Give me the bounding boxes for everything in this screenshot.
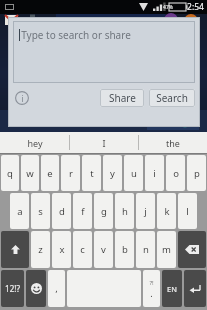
button[interactable]: Key: [1, 270, 24, 307]
button[interactable]: l: [178, 193, 197, 229]
staticText: Share: [109, 91, 136, 105]
staticText: p: [194, 167, 200, 180]
staticText: a: [17, 205, 23, 218]
button[interactable]: Key: [184, 270, 206, 307]
button[interactable]: e: [41, 155, 59, 191]
button[interactable]: f: [73, 193, 92, 229]
button[interactable]: ?!: [143, 270, 160, 307]
button[interactable]: n: [136, 231, 155, 268]
button[interactable]: g: [94, 193, 113, 229]
staticText: w: [26, 167, 34, 180]
staticText: Search: [156, 91, 188, 105]
staticText: b: [122, 243, 128, 256]
button[interactable]: s: [31, 193, 50, 229]
staticText: g: [101, 205, 107, 218]
button[interactable]: Key: [1, 231, 29, 268]
staticText: j: [144, 205, 147, 218]
button[interactable]: o: [166, 155, 185, 191]
staticText: ?!: [149, 279, 154, 287]
staticText: s: [38, 205, 43, 218]
staticText: ,: [55, 282, 58, 295]
staticText: v: [101, 243, 106, 256]
staticText: 2:54: [187, 1, 204, 13]
button[interactable]: w: [21, 155, 39, 191]
button[interactable]: x: [52, 231, 71, 268]
staticText: i: [21, 93, 24, 104]
staticText: .: [150, 287, 153, 299]
staticText: r: [69, 167, 73, 180]
staticText: u: [131, 167, 137, 180]
staticText: hey: [27, 137, 43, 149]
staticText: o: [173, 167, 179, 180]
button[interactable]: c: [73, 231, 92, 268]
staticText: Type to search or share: [21, 28, 131, 42]
staticText: c: [80, 243, 85, 256]
button[interactable]: t: [82, 155, 101, 191]
staticText: z: [38, 243, 43, 256]
staticText: f: [81, 205, 85, 218]
staticText: x: [59, 243, 65, 256]
staticText: m: [162, 243, 171, 256]
button[interactable]: j: [136, 193, 155, 229]
staticText: n: [143, 243, 149, 256]
button[interactable]: the: [139, 132, 207, 153]
button[interactable]: p: [187, 155, 206, 191]
button[interactable]: b: [115, 231, 134, 268]
button[interactable]: i: [145, 155, 164, 191]
button[interactable]: hey: [0, 132, 69, 153]
button[interactable]: Type to search or share: [13, 21, 195, 83]
staticText: d: [59, 205, 65, 218]
staticText: q: [7, 167, 13, 180]
button[interactable]: h: [115, 193, 134, 229]
button[interactable]: Share: [100, 89, 144, 107]
button[interactable]: z: [31, 231, 50, 268]
staticText: 12!?: [5, 283, 20, 294]
button[interactable]: Key: [162, 270, 182, 307]
staticText: I: [102, 137, 106, 149]
button[interactable]: a: [10, 193, 29, 229]
button[interactable]: Search: [149, 89, 195, 107]
button[interactable]: ,: [48, 270, 65, 307]
staticText: y: [110, 167, 115, 180]
staticText: k: [164, 205, 170, 218]
staticText: the: [166, 137, 180, 149]
button[interactable]: I: [70, 132, 138, 153]
button[interactable]: k: [157, 193, 176, 229]
staticText: t: [90, 167, 94, 180]
button[interactable]: q: [1, 155, 19, 191]
staticText: EN: [167, 284, 177, 294]
button[interactable]: v: [94, 231, 113, 268]
button[interactable]: y: [103, 155, 122, 191]
button[interactable]: d: [52, 193, 71, 229]
button[interactable]: Key: [178, 231, 206, 268]
staticText: 47%: [163, 4, 173, 11]
button[interactable]: r: [61, 155, 80, 191]
staticText: i: [153, 167, 156, 180]
staticText: e: [47, 167, 53, 180]
staticText: l: [186, 205, 189, 218]
button[interactable]: Info: [15, 91, 29, 105]
staticText: h: [122, 205, 128, 218]
button[interactable]: u: [124, 155, 143, 191]
button[interactable]: Key: [26, 270, 46, 307]
button[interactable]: m: [157, 231, 176, 268]
staticText: Write & Share: [12, 116, 68, 128]
